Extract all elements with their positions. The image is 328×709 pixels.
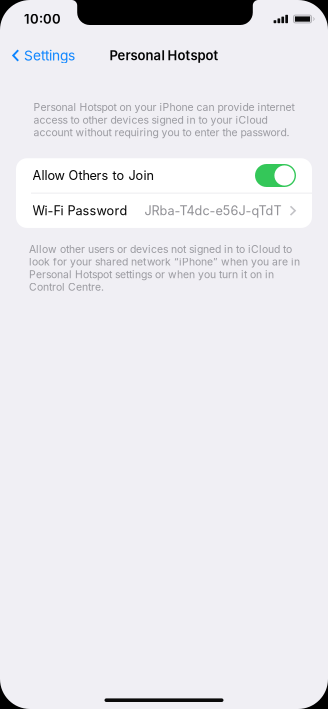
staticText: Personal Hotspot on your iPhone can prov… xyxy=(33,101,294,139)
staticText: Allow Others to Join xyxy=(33,168,154,183)
staticText: Settings xyxy=(24,47,75,64)
staticText: Allow other users or devices not signed … xyxy=(29,243,300,293)
staticText: JRba-T4dc-e56J-qTdT xyxy=(145,203,282,218)
button[interactable]: Settings xyxy=(0,42,83,68)
staticText: Wi-Fi Password xyxy=(33,203,128,218)
button[interactable]: Wi-Fi Password xyxy=(16,193,312,228)
button[interactable]: Allow Others to Join xyxy=(16,158,312,193)
staticText: Personal Hotspot xyxy=(109,48,218,63)
staticText: 10:00 xyxy=(24,11,61,27)
